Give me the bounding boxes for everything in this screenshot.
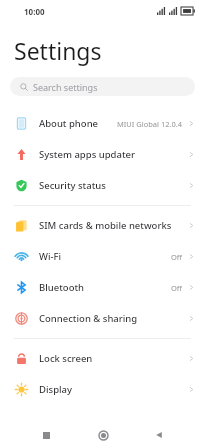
button[interactable]: Connection & sharing: [0, 303, 205, 334]
staticText: Off: [171, 252, 183, 262]
staticText: Connection & sharing: [39, 312, 188, 325]
staticText: About phone: [39, 117, 117, 130]
staticText: Settings: [14, 35, 102, 66]
button[interactable]: Bluetooth: [0, 272, 205, 303]
staticText: Bluetooth: [39, 281, 171, 294]
staticText: 10:00: [24, 6, 45, 17]
button[interactable]: Display: [0, 374, 205, 405]
button[interactable]: Home: [92, 424, 114, 446]
staticText: Lock screen: [39, 352, 188, 365]
button[interactable]: SIM cards & mobile networks: [0, 210, 205, 241]
button[interactable]: Back: [148, 424, 170, 446]
staticText: SIM cards & mobile networks: [39, 219, 188, 232]
staticText: System apps updater: [39, 148, 188, 161]
button[interactable]: Search settings: [10, 77, 195, 96]
staticText: Off: [171, 283, 183, 293]
staticText: MIUI Global 12.0.4: [117, 119, 183, 129]
staticText: Security status: [39, 179, 188, 192]
button[interactable]: System apps updater: [0, 139, 205, 170]
button[interactable]: Security status: [0, 170, 205, 201]
staticText: Search settings: [33, 81, 98, 93]
staticText: Display: [39, 383, 188, 396]
staticText: Wi-Fi: [39, 250, 171, 263]
button[interactable]: Recents: [35, 424, 57, 446]
button[interactable]: Lock screen: [0, 343, 205, 374]
button[interactable]: About phone: [0, 108, 205, 139]
button[interactable]: Wi-Fi: [0, 241, 205, 272]
